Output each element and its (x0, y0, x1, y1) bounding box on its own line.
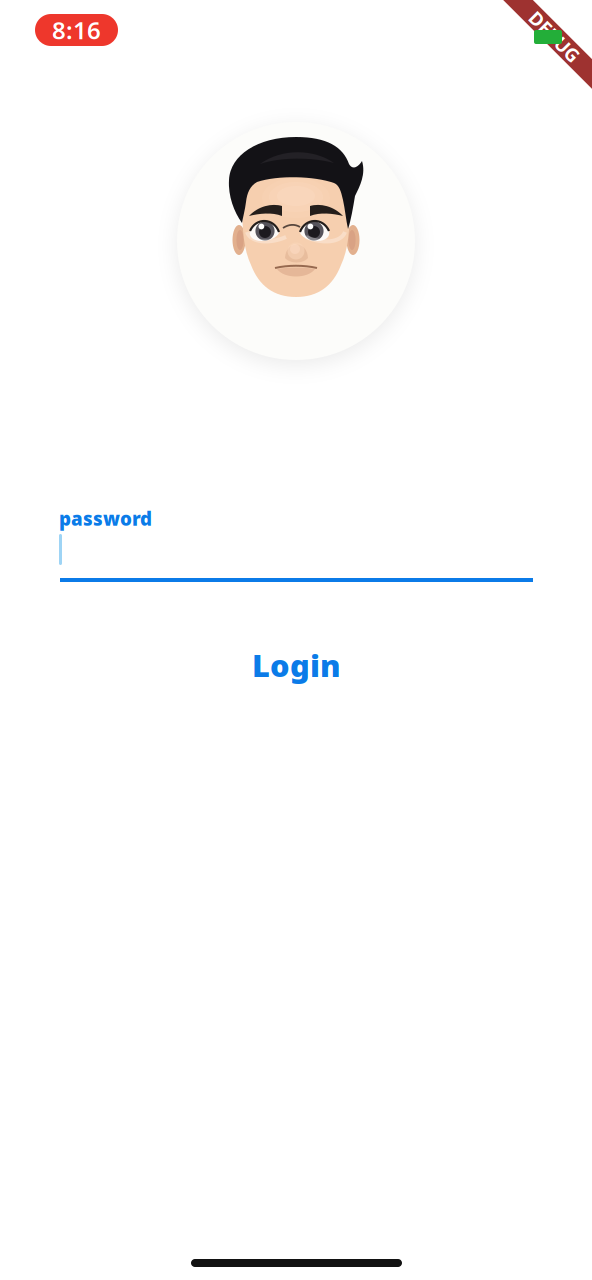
staticText: Login (252, 645, 341, 685)
staticText: password (59, 506, 152, 531)
staticText: 8:16 (52, 14, 101, 46)
button[interactable]: Login (60, 643, 533, 687)
staticText: DEBUG (518, 36, 582, 60)
